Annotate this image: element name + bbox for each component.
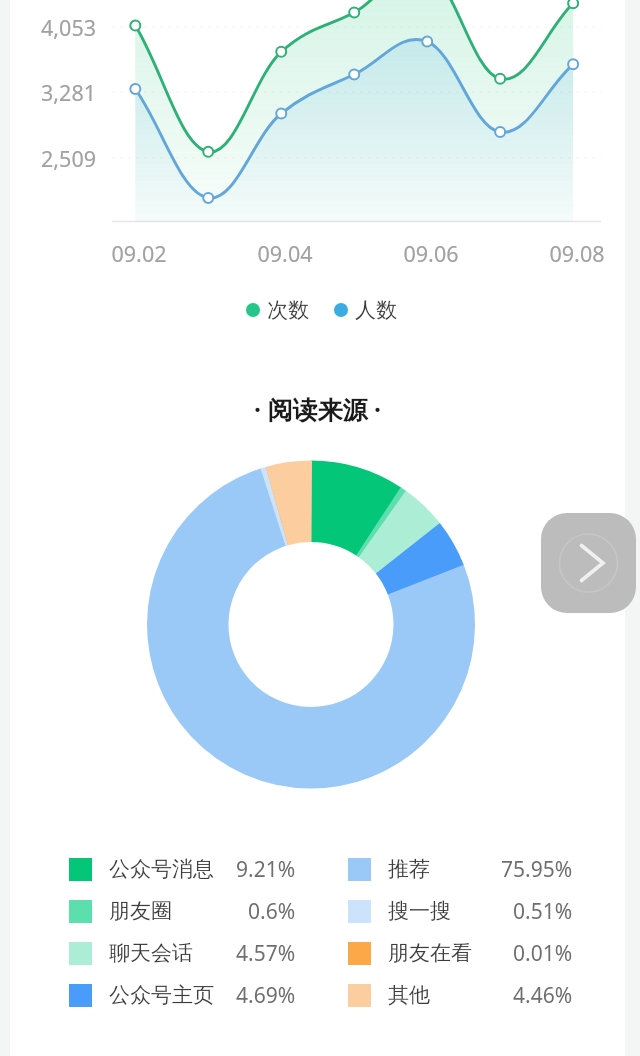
staticText: 09.08 — [527, 239, 627, 268]
staticText: 4.46% — [513, 981, 573, 1010]
staticText: 4,053 — [10, 13, 96, 42]
staticText: 公众号主页 — [109, 982, 214, 1008]
button[interactable]: Next page — [541, 513, 636, 613]
staticText: 其他 — [388, 982, 430, 1008]
staticText: 09.02 — [89, 239, 189, 268]
button[interactable]: 人数 — [334, 296, 397, 324]
button[interactable]: 朋友圈 — [69, 890, 296, 932]
staticText: 推荐 — [388, 856, 430, 882]
staticText: 人数 — [355, 297, 397, 323]
staticText: · 阅读来源 · — [254, 392, 382, 426]
staticText: 3,281 — [10, 78, 96, 107]
button[interactable]: 聊天会话 — [69, 932, 296, 974]
button[interactable]: 次数 — [246, 296, 309, 324]
staticText: 公众号消息 — [109, 856, 214, 882]
button[interactable]: 推荐 — [348, 848, 573, 890]
button[interactable]: 搜一搜 — [348, 890, 573, 932]
staticText: 75.95% — [501, 855, 573, 884]
staticText: 朋友在看 — [388, 940, 472, 966]
staticText: 0.01% — [513, 939, 573, 968]
staticText: 09.06 — [381, 239, 481, 268]
button[interactable]: 其他 — [348, 974, 573, 1016]
staticText: 次数 — [267, 297, 309, 323]
staticText: 2,509 — [10, 144, 96, 173]
button[interactable]: 朋友在看 — [348, 932, 573, 974]
button[interactable]: 公众号消息 — [69, 848, 296, 890]
staticText: 0.6% — [248, 897, 296, 926]
staticText: 4.69% — [236, 981, 296, 1010]
staticText: 0.51% — [513, 897, 573, 926]
staticText: 搜一搜 — [388, 898, 451, 924]
staticText: 聊天会话 — [109, 940, 193, 966]
staticText: 朋友圈 — [109, 898, 172, 924]
staticText: 4.57% — [236, 939, 296, 968]
staticText: 9.21% — [236, 855, 296, 884]
button[interactable]: 公众号主页 — [69, 974, 296, 1016]
staticText: 09.04 — [235, 239, 335, 268]
